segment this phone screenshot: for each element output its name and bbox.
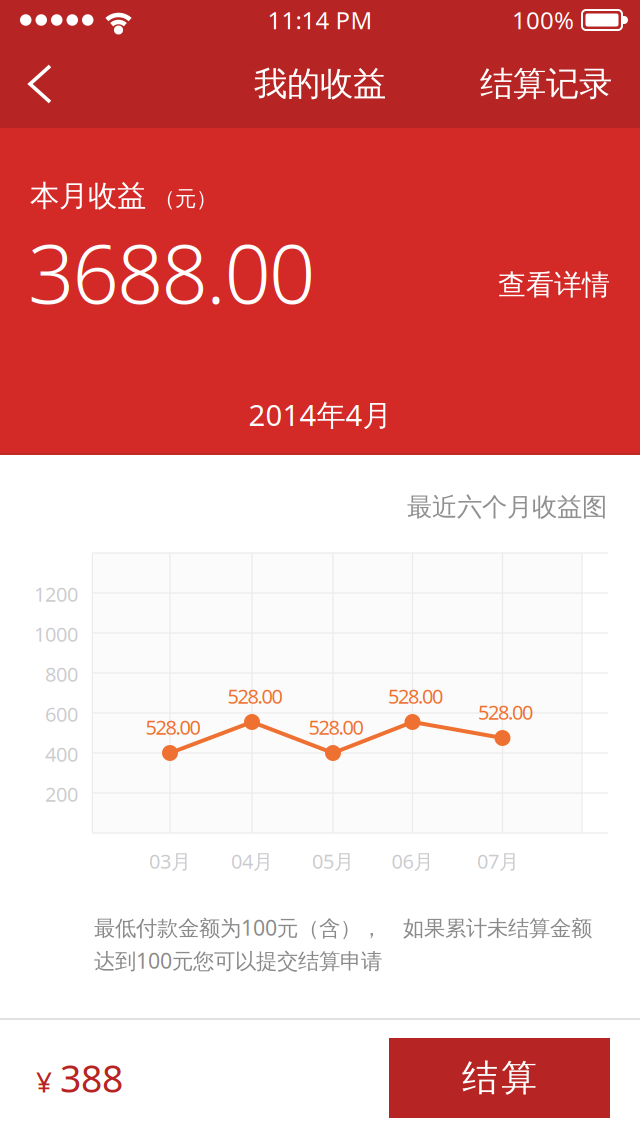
staticText: （元） — [154, 186, 217, 212]
staticText: 03月 — [149, 848, 191, 874]
staticText: 06月 — [391, 848, 433, 874]
staticText: 11:14 PM — [267, 4, 372, 36]
staticText: 07月 — [477, 848, 519, 874]
staticText: 05月 — [312, 848, 354, 874]
staticText: 结算记录 — [480, 63, 612, 104]
staticText: 388 — [60, 1053, 123, 1103]
staticText: 1000 — [34, 621, 78, 647]
staticText: 2014年4月 — [248, 395, 391, 434]
staticText: 我的收益 — [254, 63, 386, 104]
staticText: ¥ — [36, 1063, 52, 1100]
staticText: 200 — [45, 781, 78, 807]
staticText: 400 — [45, 741, 78, 767]
staticText: 528.00 — [227, 683, 282, 709]
staticText: 结算 — [462, 1056, 537, 1100]
button[interactable]: 结算记录 — [480, 39, 640, 128]
staticText: 3688.00 — [28, 218, 315, 326]
button[interactable]: 查看详情 — [498, 268, 610, 326]
staticText: 528.00 — [308, 714, 363, 740]
staticText: 最近六个月收益图 — [407, 491, 607, 522]
staticText: 04月 — [231, 848, 273, 874]
staticText: 528.00 — [388, 683, 443, 709]
staticText: 最低付款金额为100元（含）， 如果累计未结算金额 达到100元您可以提交结算申… — [94, 913, 592, 975]
staticText: 100% — [512, 4, 574, 36]
staticText: 600 — [45, 701, 78, 727]
staticText: 528.00 — [478, 699, 533, 725]
staticText: 1200 — [34, 581, 78, 607]
button[interactable]: Back — [0, 40, 52, 128]
staticText: 528.00 — [145, 714, 200, 740]
staticText: 800 — [45, 661, 78, 687]
staticText: 本月收益 — [30, 178, 146, 214]
button[interactable]: 结算 — [389, 1038, 610, 1118]
staticText: 查看详情 — [498, 268, 610, 302]
